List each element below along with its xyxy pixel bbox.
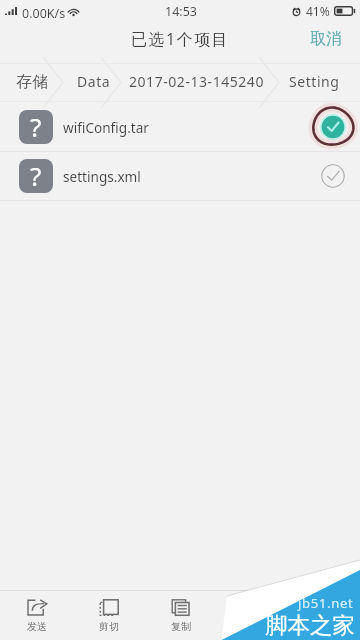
staticText: 41% bbox=[306, 3, 330, 19]
button[interactable]: Cut bbox=[73, 591, 145, 640]
button[interactable]: 取消 bbox=[294, 22, 360, 63]
staticText: 存储 bbox=[16, 72, 50, 92]
staticText: 剪切 bbox=[99, 620, 119, 633]
staticText: ? bbox=[30, 110, 42, 143]
staticText: 复制 bbox=[171, 620, 191, 633]
other: Cut bbox=[99, 599, 119, 616]
staticText: wifiConfig.tar bbox=[63, 118, 149, 137]
button[interactable]: ? bbox=[0, 152, 360, 200]
button[interactable]: 2017-02-13-145240 bbox=[129, 63, 264, 102]
staticText: 0.00K/s bbox=[22, 5, 66, 22]
staticText: 发送 bbox=[27, 620, 47, 633]
button[interactable]: Copy bbox=[145, 591, 217, 640]
button[interactable]: Data bbox=[77, 63, 111, 102]
staticText: settings.xml bbox=[63, 167, 141, 186]
staticText: ? bbox=[30, 159, 42, 192]
button[interactable]: ? bbox=[0, 103, 360, 151]
button[interactable]: 存储 bbox=[16, 63, 50, 102]
button[interactable]: Setting bbox=[289, 63, 340, 102]
button[interactable]: Selected bbox=[309, 103, 357, 151]
button[interactable]: Select bbox=[309, 152, 357, 200]
other: Send bbox=[25, 599, 49, 616]
staticText: 脚本之家 bbox=[265, 611, 355, 639]
staticText: Setting bbox=[289, 72, 340, 91]
staticText: jb51.net bbox=[298, 594, 354, 612]
other: Copy bbox=[171, 599, 191, 616]
staticText: 2017-02-13-145240 bbox=[129, 72, 264, 91]
staticText: Data bbox=[77, 72, 111, 91]
staticText: 取消 bbox=[310, 29, 342, 49]
staticText: 已选1个项目 bbox=[131, 28, 230, 50]
button[interactable]: Send bbox=[1, 591, 73, 640]
staticText: 14:53 bbox=[165, 3, 197, 20]
